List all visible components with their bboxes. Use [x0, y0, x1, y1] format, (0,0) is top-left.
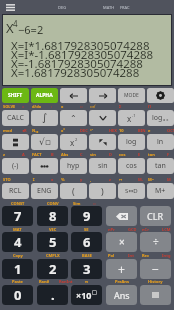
staticText: S⇔D [125, 187, 138, 195]
button[interactable]: hyp [60, 158, 87, 174]
button[interactable]: ÷ [140, 232, 171, 252]
staticText: hyp [67, 161, 80, 171]
staticText: VEC [49, 227, 57, 232]
button[interactable]: 1 [2, 259, 33, 279]
button[interactable]: Menu [0, 0, 20, 14]
staticText: nCr [142, 227, 149, 232]
staticText: sin [90, 152, 96, 157]
staticText: mod [3, 128, 12, 133]
button[interactable]: − [140, 259, 171, 279]
staticText: E [138, 152, 141, 157]
button[interactable]: 3 [71, 259, 102, 279]
button[interactable]: 7 [2, 206, 33, 226]
button[interactable]: 2 [37, 259, 68, 279]
button[interactable]: S⇔D [118, 183, 145, 199]
staticText: STO [3, 177, 11, 182]
button[interactable]: SHIFT [2, 88, 29, 103]
button[interactable]: x [118, 110, 145, 126]
button[interactable]: + [106, 259, 137, 279]
button[interactable]: Left [60, 88, 87, 103]
button[interactable]: x [60, 134, 87, 150]
button[interactable]: sin [89, 158, 116, 174]
staticText: GCD [128, 227, 137, 232]
button[interactable]: Backspace [106, 206, 137, 226]
staticText: FACT [32, 152, 42, 157]
staticText: MATH [103, 5, 115, 10]
button[interactable]: Right [89, 88, 116, 103]
button[interactable]: ALPHA [31, 88, 58, 103]
staticText: Pol [108, 253, 115, 258]
staticText: ln [157, 137, 164, 147]
button[interactable]: ENG [31, 183, 58, 199]
button[interactable]: √▫ [31, 134, 58, 150]
staticText: = [22, 104, 25, 109]
staticText: ◂R [22, 128, 27, 133]
staticText: tan [155, 161, 166, 171]
button[interactable]: 4 [2, 232, 33, 252]
button[interactable] [2, 134, 29, 150]
staticText: + [118, 261, 125, 277]
button[interactable]: 5 [37, 232, 68, 252]
button[interactable]: × [106, 232, 137, 252]
button[interactable] [31, 158, 58, 174]
staticText: Sim [73, 201, 81, 206]
staticText: nPr [108, 227, 115, 232]
button[interactable]: log [147, 110, 174, 126]
button[interactable]: M+ [147, 183, 174, 199]
staticText: 10 [119, 128, 124, 133]
button[interactable]: ×10 [71, 285, 102, 305]
button[interactable]: CALC [2, 110, 29, 126]
button[interactable]: ) [89, 183, 116, 199]
button[interactable]: ( [60, 183, 87, 199]
staticText: ∫ [42, 112, 48, 124]
staticText: DEC [80, 128, 88, 133]
staticText: CALC [7, 113, 24, 123]
button[interactable]: CLR [140, 206, 171, 226]
button[interactable]: Equals [140, 285, 171, 305]
button[interactable]: RCL [2, 183, 29, 199]
staticText: RCL [9, 186, 22, 196]
button[interactable]: Settings [147, 88, 174, 103]
staticText: X=-1.6817928305074288 [11, 56, 143, 72]
button[interactable]: MODE [118, 88, 145, 103]
button[interactable]: 6 [71, 232, 102, 252]
staticText: B [51, 152, 54, 157]
staticText: z [3, 152, 5, 157]
staticText: M [167, 177, 171, 182]
staticText: ▫ [80, 104, 83, 109]
staticText: BASE [82, 253, 92, 258]
staticText: -1 [132, 113, 136, 118]
staticText: d/dx [32, 104, 42, 109]
staticText: x [70, 137, 75, 148]
button[interactable]: 0 [2, 285, 33, 305]
button[interactable] [89, 110, 116, 126]
staticText: C [80, 152, 83, 157]
staticText: Rec [142, 253, 150, 258]
button[interactable]: ⌃ [60, 110, 87, 126]
button[interactable]: log [118, 134, 145, 150]
staticText: Ran# [39, 279, 50, 284]
staticText: 9 [83, 207, 91, 225]
other: Backspace [116, 213, 128, 220]
button[interactable] [89, 134, 116, 150]
staticText: Ans [114, 289, 130, 301]
staticText: z [109, 177, 111, 182]
staticText: x [127, 113, 132, 124]
staticText: . [51, 286, 55, 304]
staticText: ▫√ [90, 104, 96, 109]
button[interactable]: (-) [2, 158, 29, 174]
button[interactable]: Ans [106, 285, 137, 305]
button[interactable]: 8 [37, 206, 68, 226]
button[interactable]: ∫ [31, 110, 58, 126]
button[interactable]: ln [147, 134, 174, 150]
button[interactable]: cos [118, 158, 145, 174]
staticText: ⌃ [70, 114, 77, 123]
button[interactable]: tan [147, 158, 174, 174]
staticText: tan [148, 152, 155, 157]
staticText: log [152, 113, 163, 123]
staticText: e [148, 128, 151, 133]
button[interactable]: 9 [71, 206, 102, 226]
staticText: : [51, 104, 53, 109]
staticText: Copy [13, 253, 23, 258]
button[interactable]: . [37, 285, 68, 305]
